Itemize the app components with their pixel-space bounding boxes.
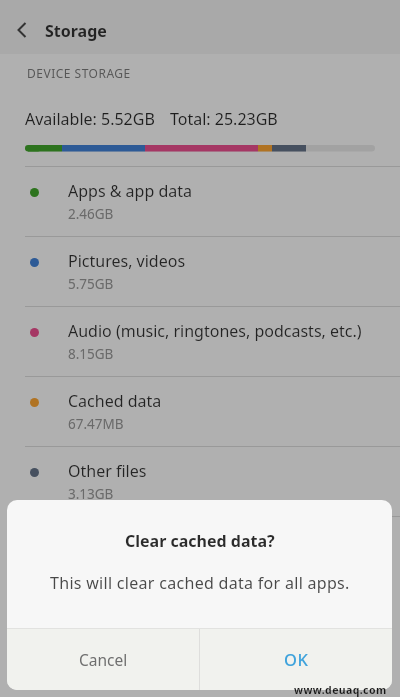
button[interactable]: OK — [200, 628, 392, 690]
staticText: This will clear cached data for all apps… — [50, 572, 350, 594]
button[interactable]: Apps & app data — [0, 167, 400, 237]
staticText: 8.15GB — [68, 345, 114, 363]
staticText: 3.13GB — [68, 485, 114, 503]
button[interactable]: Audio (music, ringtones, podcasts, etc.) — [0, 307, 400, 377]
staticText: Audio (music, ringtones, podcasts, etc.) — [68, 320, 362, 342]
button[interactable]: Cancel — [7, 628, 199, 690]
staticText: Cancel — [79, 649, 128, 670]
staticText: 2.46GB — [68, 205, 114, 223]
button[interactable]: Other files — [0, 447, 400, 517]
button[interactable]: Cached data — [0, 377, 400, 447]
staticText: Cached data — [68, 390, 162, 412]
staticText: 67.47MB — [68, 415, 124, 433]
staticText: Available: 5.52GB — [25, 108, 155, 130]
staticText: Other files — [68, 460, 147, 482]
staticText: Total: 25.23GB — [170, 108, 278, 130]
staticText: DEVICE STORAGE — [27, 65, 131, 81]
staticText: www.deuaq.com — [294, 683, 387, 697]
staticText: OK — [284, 648, 309, 670]
staticText: Storage — [45, 20, 107, 42]
staticText: 5.75GB — [68, 275, 114, 293]
staticText: Apps & app data — [68, 180, 192, 202]
staticText: Pictures, videos — [68, 250, 186, 272]
button[interactable]: Pictures, videos — [0, 237, 400, 307]
button[interactable] — [0, 0, 54, 54]
staticText: Clear cached data? — [125, 530, 275, 552]
